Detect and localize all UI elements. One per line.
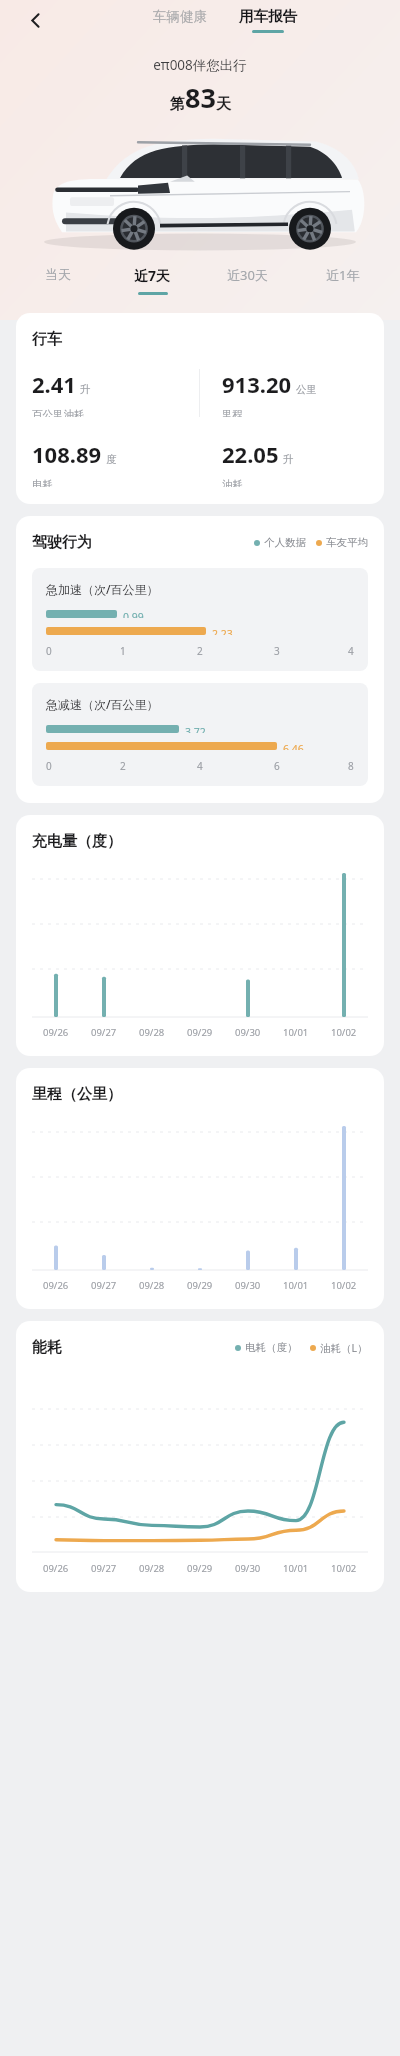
staticText: 09/30 — [235, 1562, 261, 1575]
button[interactable]: 近30天 — [200, 260, 295, 300]
button[interactable]: Back — [22, 7, 48, 33]
staticText: 09/30 — [235, 1279, 261, 1292]
button[interactable]: 能耗 — [16, 1321, 384, 1592]
staticText: 6 — [274, 759, 280, 773]
staticText: 能耗 — [32, 1338, 62, 1357]
staticText: 个人数据 — [264, 536, 306, 549]
staticText: 09/26 — [43, 1026, 69, 1039]
button[interactable]: 车辆健康 — [145, 6, 215, 27]
button[interactable]: 当天 — [10, 260, 105, 298]
staticText: 83 — [185, 79, 216, 116]
staticText: 近7天 — [134, 266, 171, 285]
staticText: 2.23 — [212, 627, 233, 635]
staticText: 里程 — [222, 408, 243, 417]
staticText: 22.05 — [222, 439, 279, 469]
staticText: 4 — [348, 644, 354, 658]
button[interactable]: 用车报告 — [233, 6, 303, 34]
staticText: 4 — [197, 759, 203, 773]
staticText: 10/02 — [331, 1279, 357, 1292]
staticText: 09/26 — [43, 1562, 69, 1575]
staticText: 用车报告 — [239, 7, 297, 25]
staticText: 10/01 — [283, 1562, 309, 1575]
staticText: 09/27 — [91, 1562, 117, 1575]
staticText: 10/01 — [283, 1026, 309, 1039]
staticText: 度 — [106, 453, 117, 466]
staticText: 电耗（度） — [245, 1341, 298, 1354]
staticText: 913.20 — [222, 369, 292, 399]
staticText: 6.46 — [283, 742, 304, 750]
staticText: 1 — [120, 644, 126, 658]
staticText: 急减速（次/百公里） — [46, 696, 159, 712]
staticText: 百公里油耗 — [32, 408, 85, 417]
staticText: 油耗 — [222, 478, 243, 487]
staticText: 天 — [216, 95, 231, 114]
staticText: 升 — [283, 453, 294, 466]
staticText: 电耗 — [32, 478, 53, 487]
button[interactable]: 行车 — [16, 313, 384, 504]
staticText: 近30天 — [227, 266, 268, 284]
staticText: 行车 — [32, 330, 62, 349]
button[interactable]: 充电量（度） — [16, 815, 384, 1056]
staticText: 09/29 — [187, 1562, 213, 1575]
staticText: 2.41 — [32, 369, 76, 399]
staticText: 10/01 — [283, 1279, 309, 1292]
staticText: 10/02 — [331, 1026, 357, 1039]
staticText: 油耗（L） — [320, 1341, 368, 1355]
staticText: 2 — [197, 644, 203, 658]
staticText: eπ008伴您出行 — [153, 56, 247, 74]
button[interactable]: 近7天 — [105, 260, 200, 301]
staticText: 8 — [348, 759, 354, 773]
staticText: 0 — [46, 644, 52, 658]
staticText: 0.99 — [123, 610, 144, 618]
staticText: 09/28 — [139, 1279, 165, 1292]
staticText: 3.72 — [185, 725, 206, 733]
staticText: 2 — [120, 759, 126, 773]
button[interactable]: 近1年 — [295, 260, 390, 300]
staticText: 3 — [274, 644, 280, 658]
staticText: 09/27 — [91, 1026, 117, 1039]
staticText: 车友平均 — [326, 536, 368, 549]
button[interactable]: 里程（公里） — [16, 1068, 384, 1309]
staticText: 10/02 — [331, 1562, 357, 1575]
staticText: 09/27 — [91, 1279, 117, 1292]
staticText: 公里 — [296, 383, 317, 396]
staticText: 升 — [80, 383, 91, 396]
staticText: 当天 — [45, 266, 71, 282]
staticText: 09/26 — [43, 1279, 69, 1292]
staticText: 近1年 — [326, 266, 360, 284]
staticText: 0 — [46, 759, 52, 773]
staticText: 09/29 — [187, 1279, 213, 1292]
staticText: 充电量（度） — [32, 832, 122, 851]
staticText: 里程（公里） — [32, 1085, 122, 1104]
staticText: 09/30 — [235, 1026, 261, 1039]
staticText: 急加速（次/百公里） — [46, 581, 159, 597]
staticText: 驾驶行为 — [32, 533, 92, 552]
staticText: 108.89 — [32, 439, 102, 469]
staticText: 09/28 — [139, 1026, 165, 1039]
staticText: 09/28 — [139, 1562, 165, 1575]
staticText: 第 — [170, 95, 185, 114]
button[interactable]: 驾驶行为 — [16, 516, 384, 803]
staticText: 车辆健康 — [153, 8, 207, 25]
staticText: 09/29 — [187, 1026, 213, 1039]
